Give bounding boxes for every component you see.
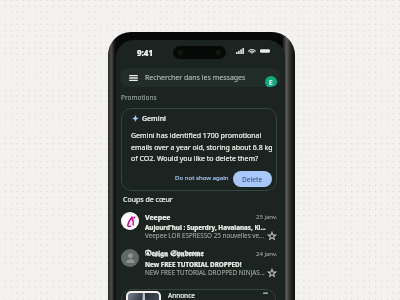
staticText: Do not show again [175,173,229,181]
button[interactable]: Open navigation menu [120,68,280,87]
button[interactable]: Do not show again [171,169,233,185]
staticText: Veepee LOR ESPRESSO 25 nouvelles ve... [145,231,268,240]
staticText: Rechercher dans les messages [145,73,246,83]
button[interactable]: Open navigation menu [127,72,139,84]
staticText: 9:41 [137,47,153,58]
staticText: Veepee [145,213,171,223]
staticText: NEW FREE TUTORIAL DROPPED NINJAS... [145,268,268,277]
staticText: 24 janv. [256,250,278,258]
button[interactable]: Veepee [116,211,285,243]
button[interactable]: Star message [267,231,277,241]
staticText: Coups de cœur [123,195,173,205]
button[interactable]: Account [265,76,277,87]
staticText: Aujourd'hui : Superdry, Havaianas, Ki... [145,223,268,232]
button[interactable]: Design Syndrome [116,248,285,280]
staticText: New FREE TUTORIAL DROPPED! [145,260,268,269]
staticText: Annonce [168,291,195,300]
other: More options [263,290,268,296]
staticText: Design Syndrome [145,250,204,258]
staticText: Gemini [142,114,166,124]
button[interactable]: Delete [233,171,272,187]
button[interactable]: Star message [267,268,277,278]
staticText: Gemini has identified 1700 promotional e… [131,131,273,163]
button[interactable]: Gemini [121,108,277,191]
staticText: 25 janv. [256,213,278,221]
staticText: Delete [242,175,263,184]
staticText: E [269,78,273,87]
staticText: Promotions [121,93,157,102]
button[interactable]: Annonce [121,289,276,300]
